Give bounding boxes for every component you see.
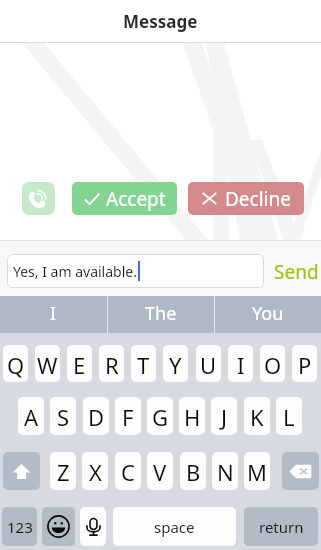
button[interactable]: R bbox=[99, 345, 124, 382]
staticText: space bbox=[154, 517, 195, 537]
staticText: I bbox=[50, 301, 57, 326]
staticText: Q bbox=[7, 350, 25, 380]
button[interactable]: Z bbox=[50, 452, 76, 490]
button[interactable]: G bbox=[147, 397, 173, 435]
staticText: Accept bbox=[106, 186, 166, 212]
button[interactable]: E bbox=[67, 345, 92, 382]
button[interactable]: space bbox=[113, 507, 236, 546]
button[interactable]: The bbox=[107, 296, 214, 333]
staticText: Message bbox=[123, 10, 198, 33]
staticText: A bbox=[24, 402, 39, 432]
staticText: Send bbox=[274, 259, 319, 285]
staticText: O bbox=[264, 350, 282, 380]
button[interactable]: B bbox=[180, 452, 206, 490]
staticText: W bbox=[37, 350, 58, 380]
staticText: H bbox=[184, 402, 201, 432]
staticText: R bbox=[105, 350, 119, 380]
button[interactable]: Yes, I am available. bbox=[7, 254, 264, 288]
staticText: Yes, I am available. bbox=[13, 262, 137, 281]
staticText: 123 bbox=[7, 517, 33, 537]
button[interactable]: 123 bbox=[2, 507, 37, 546]
button[interactable]: V bbox=[147, 452, 173, 490]
staticText: G bbox=[152, 402, 169, 432]
button[interactable]: Decline bbox=[188, 182, 304, 215]
button[interactable]: Accept bbox=[72, 182, 177, 215]
button[interactable]: Q bbox=[3, 345, 28, 382]
button[interactable]: U bbox=[196, 345, 221, 382]
staticText: T bbox=[137, 350, 150, 380]
staticText: Decline bbox=[225, 186, 291, 212]
staticText: L bbox=[283, 402, 295, 432]
button[interactable]: T bbox=[131, 345, 156, 382]
staticText: return bbox=[259, 517, 304, 537]
button[interactable]: Y bbox=[163, 345, 188, 382]
staticText: M bbox=[247, 457, 267, 487]
staticText: C bbox=[121, 457, 135, 487]
staticText: F bbox=[122, 402, 134, 432]
staticText: P bbox=[298, 350, 312, 380]
staticText: You bbox=[252, 301, 284, 326]
button[interactable]: K bbox=[244, 397, 270, 435]
staticText: D bbox=[88, 402, 105, 432]
staticText: S bbox=[57, 402, 70, 432]
staticText: E bbox=[73, 350, 86, 380]
button[interactable]: Shift bbox=[3, 452, 40, 490]
button[interactable]: You bbox=[214, 296, 321, 333]
button[interactable]: W bbox=[35, 345, 60, 382]
staticText: N bbox=[217, 457, 234, 487]
staticText: B bbox=[186, 457, 201, 487]
button[interactable]: Microphone bbox=[80, 507, 106, 546]
button[interactable]: P bbox=[292, 345, 317, 382]
button[interactable]: M bbox=[244, 452, 270, 490]
button[interactable]: S bbox=[50, 397, 76, 435]
button[interactable]: L bbox=[276, 397, 302, 435]
staticText: Y bbox=[169, 350, 182, 380]
staticText: Z bbox=[57, 457, 70, 487]
button[interactable]: X bbox=[82, 452, 108, 490]
button[interactable]: Call bbox=[22, 182, 55, 215]
button[interactable]: F bbox=[115, 397, 141, 435]
staticText: X bbox=[89, 457, 102, 487]
staticText: I bbox=[237, 350, 245, 380]
button[interactable]: O bbox=[260, 345, 285, 382]
button[interactable]: J bbox=[211, 397, 237, 435]
button[interactable]: I bbox=[228, 345, 253, 382]
button[interactable]: C bbox=[115, 452, 141, 490]
button[interactable]: A bbox=[18, 397, 44, 435]
button[interactable]: Backspace bbox=[282, 452, 319, 490]
button[interactable]: N bbox=[212, 452, 238, 490]
button[interactable]: H bbox=[179, 397, 205, 435]
staticText: J bbox=[221, 402, 228, 432]
staticText: U bbox=[200, 350, 217, 380]
button[interactable]: Send bbox=[268, 254, 320, 288]
staticText: V bbox=[153, 457, 167, 487]
button[interactable]: I bbox=[0, 296, 107, 333]
button[interactable]: Emoji bbox=[42, 507, 75, 546]
button[interactable]: return bbox=[244, 507, 318, 546]
button[interactable]: D bbox=[83, 397, 109, 435]
staticText: K bbox=[250, 402, 264, 432]
staticText: The bbox=[145, 301, 177, 326]
